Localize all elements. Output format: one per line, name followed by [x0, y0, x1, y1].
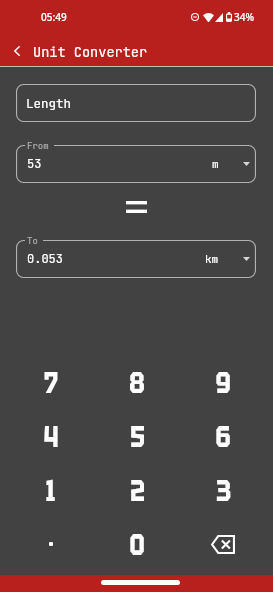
- staticText: To: [27, 235, 38, 247]
- button[interactable]: Backspace: [180, 517, 266, 571]
- button[interactable]: 0: [94, 517, 180, 571]
- staticText: 9: [215, 363, 231, 402]
- staticText: Unit Converter: [33, 43, 148, 61]
- button[interactable]: 9: [180, 355, 266, 409]
- staticText: 53: [27, 156, 42, 172]
- staticText: km: [205, 252, 219, 267]
- button[interactable]: 6: [180, 409, 266, 463]
- staticText: Length: [26, 95, 72, 112]
- staticText: From: [27, 140, 49, 152]
- button[interactable]: Select unit: [234, 247, 258, 271]
- button[interactable]: Back: [5, 39, 29, 63]
- staticText: 34%: [234, 10, 254, 24]
- button[interactable]: Select unit: [234, 152, 258, 176]
- staticText: 1: [45, 471, 55, 510]
- button[interactable]: 4: [7, 409, 94, 463]
- staticText: 3: [216, 471, 231, 510]
- staticText: 6: [215, 417, 231, 456]
- other: Backspace: [211, 535, 235, 554]
- staticText: 2: [130, 471, 145, 510]
- button[interactable]: Decimal point: [7, 517, 94, 571]
- button[interactable]: 7: [7, 355, 94, 409]
- button[interactable]: 3: [180, 463, 266, 517]
- staticText: m: [212, 157, 219, 172]
- staticText: 5: [130, 417, 145, 456]
- staticText: 05:49: [41, 10, 67, 24]
- button[interactable]: Length: [16, 84, 256, 122]
- button[interactable]: 1: [7, 463, 94, 517]
- staticText: 8: [129, 363, 145, 402]
- staticText: 0: [129, 525, 145, 564]
- staticText: 0.053: [27, 251, 64, 267]
- button[interactable]: 2: [94, 463, 180, 517]
- button[interactable]: 5: [94, 409, 180, 463]
- staticText: 7: [44, 363, 58, 402]
- other: Decimal point: [49, 542, 53, 546]
- staticText: 4: [43, 417, 59, 456]
- button[interactable]: 8: [94, 355, 180, 409]
